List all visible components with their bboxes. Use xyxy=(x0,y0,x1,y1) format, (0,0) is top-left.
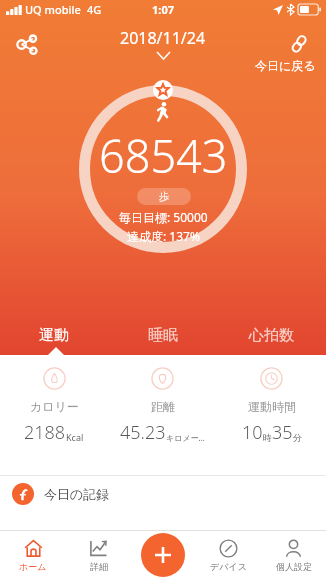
staticText: 45.23 xyxy=(120,420,166,445)
button[interactable]: 睡眠 xyxy=(108,315,217,355)
button[interactable]: デバイス xyxy=(196,531,261,579)
staticText: 個人設定 xyxy=(276,561,312,572)
button[interactable]: 運動 xyxy=(0,315,108,355)
staticText: デバイス xyxy=(210,561,247,572)
button[interactable]: 今日に戻る xyxy=(252,56,319,75)
staticText: 10 xyxy=(242,420,263,445)
staticText: キロメー… xyxy=(166,432,205,443)
button[interactable]: カロリー xyxy=(0,367,108,465)
staticText: 2018/11/24 xyxy=(120,27,206,49)
staticText: 睡眠 xyxy=(148,326,178,345)
staticText: 心拍数 xyxy=(249,326,294,345)
staticText: 分 xyxy=(293,432,302,443)
staticText: 2188 xyxy=(24,420,66,445)
button[interactable]: 今日の記録 xyxy=(0,476,326,512)
button[interactable]: 運動時間 xyxy=(217,367,326,465)
button[interactable]: 距離 xyxy=(108,367,217,465)
button[interactable]: Link device xyxy=(280,25,318,63)
staticText: 達成度: 137% xyxy=(127,228,200,244)
staticText: 歩 xyxy=(159,190,169,203)
button[interactable]: 詳細 xyxy=(66,531,131,579)
button[interactable]: 個人設定 xyxy=(261,531,326,579)
staticText: 運動時間 xyxy=(248,399,296,414)
staticText: 時 xyxy=(263,432,272,443)
staticText: 35 xyxy=(272,420,293,445)
button[interactable]: Share xyxy=(8,25,46,63)
button[interactable]: ホーム xyxy=(0,531,66,579)
staticText: 運動 xyxy=(39,326,69,345)
staticText: ホーム xyxy=(19,561,47,572)
staticText: 1:07 xyxy=(152,2,174,17)
staticText: 毎日目標: 50000 xyxy=(119,209,208,225)
button[interactable]: 心拍数 xyxy=(217,315,326,355)
staticText: 68543 xyxy=(99,125,228,186)
staticText: 4G xyxy=(87,2,102,17)
button[interactable]: 2018/11/24 xyxy=(108,25,218,61)
staticText: 詳細 xyxy=(90,561,108,572)
staticText: UQ mobile xyxy=(25,2,81,17)
staticText: カロリー xyxy=(30,399,79,414)
staticText: 距離 xyxy=(151,399,175,414)
staticText: Kcal xyxy=(66,431,84,443)
staticText: 今日に戻る xyxy=(255,58,316,73)
staticText: 今日の記録 xyxy=(44,486,110,502)
button[interactable]: Add xyxy=(141,533,185,577)
